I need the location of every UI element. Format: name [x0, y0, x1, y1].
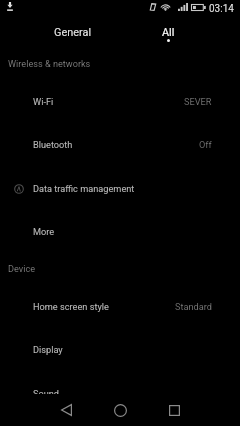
button[interactable]: All: [128, 18, 208, 44]
staticText: More: [33, 226, 55, 237]
button[interactable]: Back: [52, 396, 80, 424]
staticText: Device: [8, 264, 36, 275]
staticText: Wi-Fi: [33, 96, 54, 107]
button[interactable]: Wi-Fi: [0, 80, 240, 123]
button[interactable]: Display: [0, 328, 240, 371]
staticText: Sound: [33, 388, 60, 394]
button[interactable]: Recent apps: [160, 396, 188, 424]
button[interactable]: General: [33, 18, 113, 44]
staticText: All: [162, 26, 175, 39]
button[interactable]: More: [0, 210, 240, 253]
button[interactable]: Home screen style: [0, 285, 240, 328]
staticText: Display: [33, 344, 63, 355]
button[interactable]: Data traffic management: [0, 167, 240, 210]
staticText: Wireless & networks: [8, 59, 91, 70]
button[interactable]: Bluetooth: [0, 123, 240, 166]
staticText: SEVER: [184, 96, 212, 107]
button[interactable]: Sound: [0, 372, 240, 394]
staticText: General: [54, 26, 92, 39]
staticText: Standard: [175, 301, 212, 312]
button[interactable]: Home: [106, 396, 134, 424]
staticText: Off: [199, 139, 212, 150]
staticText: Data traffic management: [33, 183, 135, 194]
staticText: Bluetooth: [33, 139, 73, 150]
staticText: 03:14: [209, 3, 234, 15]
staticText: Home screen style: [33, 301, 109, 312]
